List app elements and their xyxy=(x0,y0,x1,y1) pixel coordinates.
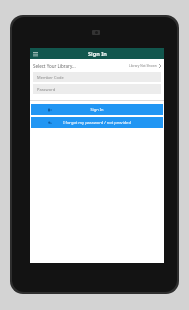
button[interactable]: I forgot my password / not provided xyxy=(31,117,163,128)
staticText: Sign In xyxy=(88,50,107,57)
button[interactable]: Password xyxy=(33,84,161,94)
button[interactable]: Menu xyxy=(31,49,40,58)
button[interactable]: Member Code xyxy=(33,72,161,82)
staticText: I forgot my password / not provided xyxy=(63,120,131,125)
button[interactable]: Sign In xyxy=(31,104,163,115)
staticText: Password xyxy=(37,87,56,92)
button[interactable]: Select Your Library... xyxy=(30,59,164,72)
staticText: Member Code xyxy=(37,75,64,80)
staticText: Select Your Library... xyxy=(33,63,76,69)
staticText: Sign In xyxy=(90,107,104,112)
staticText: Library Not Shown xyxy=(129,64,157,68)
